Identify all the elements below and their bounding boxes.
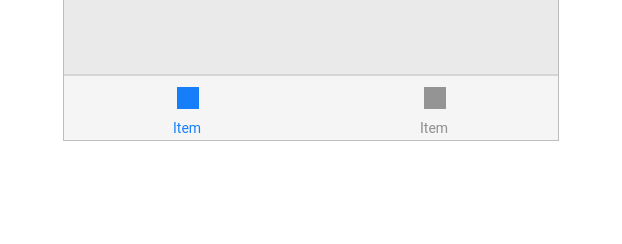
- button[interactable]: Item: [64, 76, 311, 140]
- staticText: Item: [173, 120, 202, 136]
- staticText: Item: [420, 120, 449, 136]
- button[interactable]: Item: [311, 76, 558, 140]
